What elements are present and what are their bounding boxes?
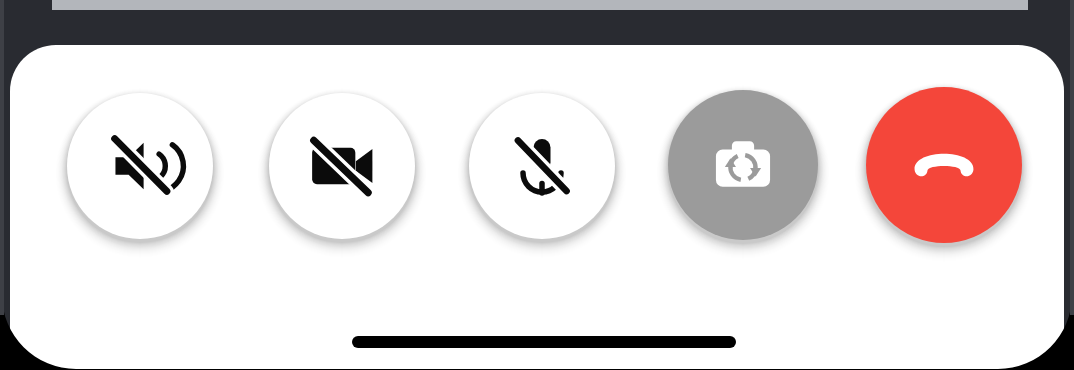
button[interactable]: End call — [866, 87, 1022, 243]
button[interactable]: Mute speaker — [67, 93, 213, 239]
button[interactable]: Turn off camera — [269, 93, 415, 239]
button[interactable]: Mute microphone — [469, 93, 615, 239]
button[interactable]: Switch camera — [668, 90, 818, 240]
